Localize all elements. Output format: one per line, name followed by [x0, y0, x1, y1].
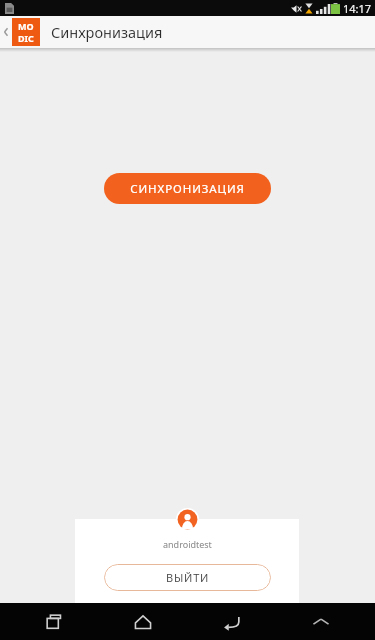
staticText: MO [18, 20, 34, 32]
button[interactable]: MODIC [12, 18, 40, 46]
button[interactable]: ВЫЙТИ [104, 564, 271, 591]
staticText: DIC [18, 32, 34, 44]
button[interactable]: Назад [0, 16, 12, 48]
staticText: Синхронизация [51, 22, 163, 42]
staticText: СИНХРОНИЗАЦИЯ [130, 181, 245, 197]
button[interactable]: СИНХРОНИЗАЦИЯ [104, 173, 271, 204]
staticText: ВЫЙТИ [166, 570, 210, 585]
button[interactable]: Назад [197, 603, 267, 640]
staticText: androidtest [163, 538, 212, 550]
button[interactable]: Главный экран [108, 603, 178, 640]
staticText: 14:17 [343, 1, 372, 16]
button[interactable]: Недавние [19, 603, 89, 640]
button[interactable]: Показать панель [286, 603, 356, 640]
